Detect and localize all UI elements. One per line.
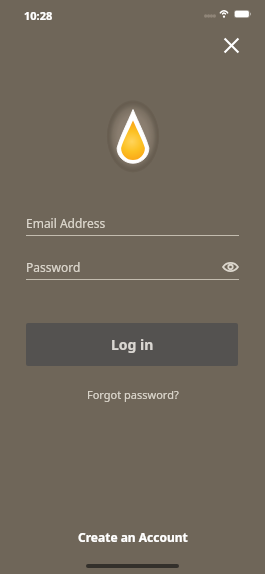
button[interactable]: Forgot password?: [79, 383, 187, 406]
staticText: Email Address: [26, 215, 239, 231]
staticText: Password: [26, 259, 222, 275]
button[interactable]: Create an Account: [66, 523, 200, 551]
button[interactable]: Log in: [26, 323, 238, 366]
staticText: Log in: [111, 335, 154, 354]
button[interactable]: Close: [217, 31, 246, 60]
staticText: Create an Account: [78, 529, 188, 545]
staticText: 10:28: [24, 8, 53, 23]
button[interactable]: Show password: [222, 260, 239, 274]
